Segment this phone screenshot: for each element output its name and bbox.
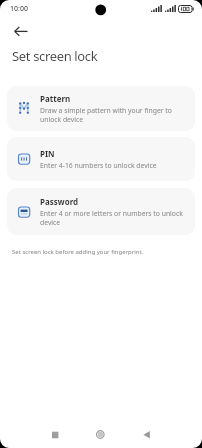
button[interactable]: Pattern <box>7 86 195 131</box>
button[interactable]: PIN <box>7 137 195 181</box>
button[interactable] <box>10 24 32 40</box>
button[interactable]: Password <box>7 188 195 235</box>
button[interactable] <box>90 425 110 445</box>
staticText: unlock device <box>40 115 84 124</box>
button[interactable] <box>45 425 65 445</box>
button[interactable] <box>137 425 157 445</box>
staticText: PIN <box>40 148 55 159</box>
staticText: Enter 4 or more letters or numbers to un… <box>40 209 183 218</box>
staticText: device <box>40 218 61 227</box>
staticText: Set screen lock before adding your finge… <box>12 248 144 256</box>
staticText: Password <box>40 196 79 207</box>
staticText: 10:00 <box>10 4 28 14</box>
staticText: Pattern <box>40 93 71 104</box>
staticText: Set screen lock <box>12 47 98 65</box>
staticText: Enter 4-16 numbers to unlock device <box>40 161 157 170</box>
staticText: Draw a simple pattern with your finger t… <box>40 106 172 115</box>
